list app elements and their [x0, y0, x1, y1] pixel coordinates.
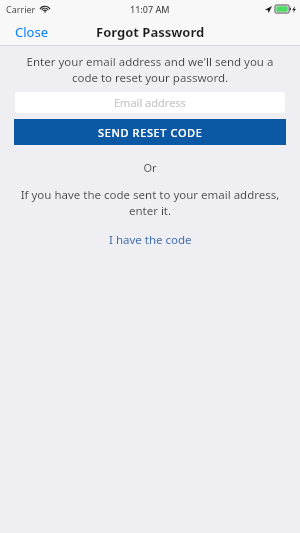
button[interactable]: SEND RESET CODE [14, 119, 286, 145]
staticText: Carrier [6, 3, 36, 15]
staticText: SEND RESET CODE [98, 125, 203, 140]
staticText: I have the code [109, 232, 192, 248]
button[interactable]: Close [0, 18, 63, 46]
staticText: Or [0, 160, 300, 175]
staticText: 11:07 AM [130, 3, 170, 15]
button[interactable]: I have the code [101, 230, 200, 250]
staticText: Email address [114, 95, 186, 110]
staticText: If you have the code sent to your email … [14, 187, 286, 219]
staticText: Forgot Password [96, 23, 205, 41]
button[interactable]: Email address [15, 92, 285, 113]
staticText: Enter your email address and we'll send … [22, 54, 278, 85]
staticText: Close [15, 23, 48, 41]
